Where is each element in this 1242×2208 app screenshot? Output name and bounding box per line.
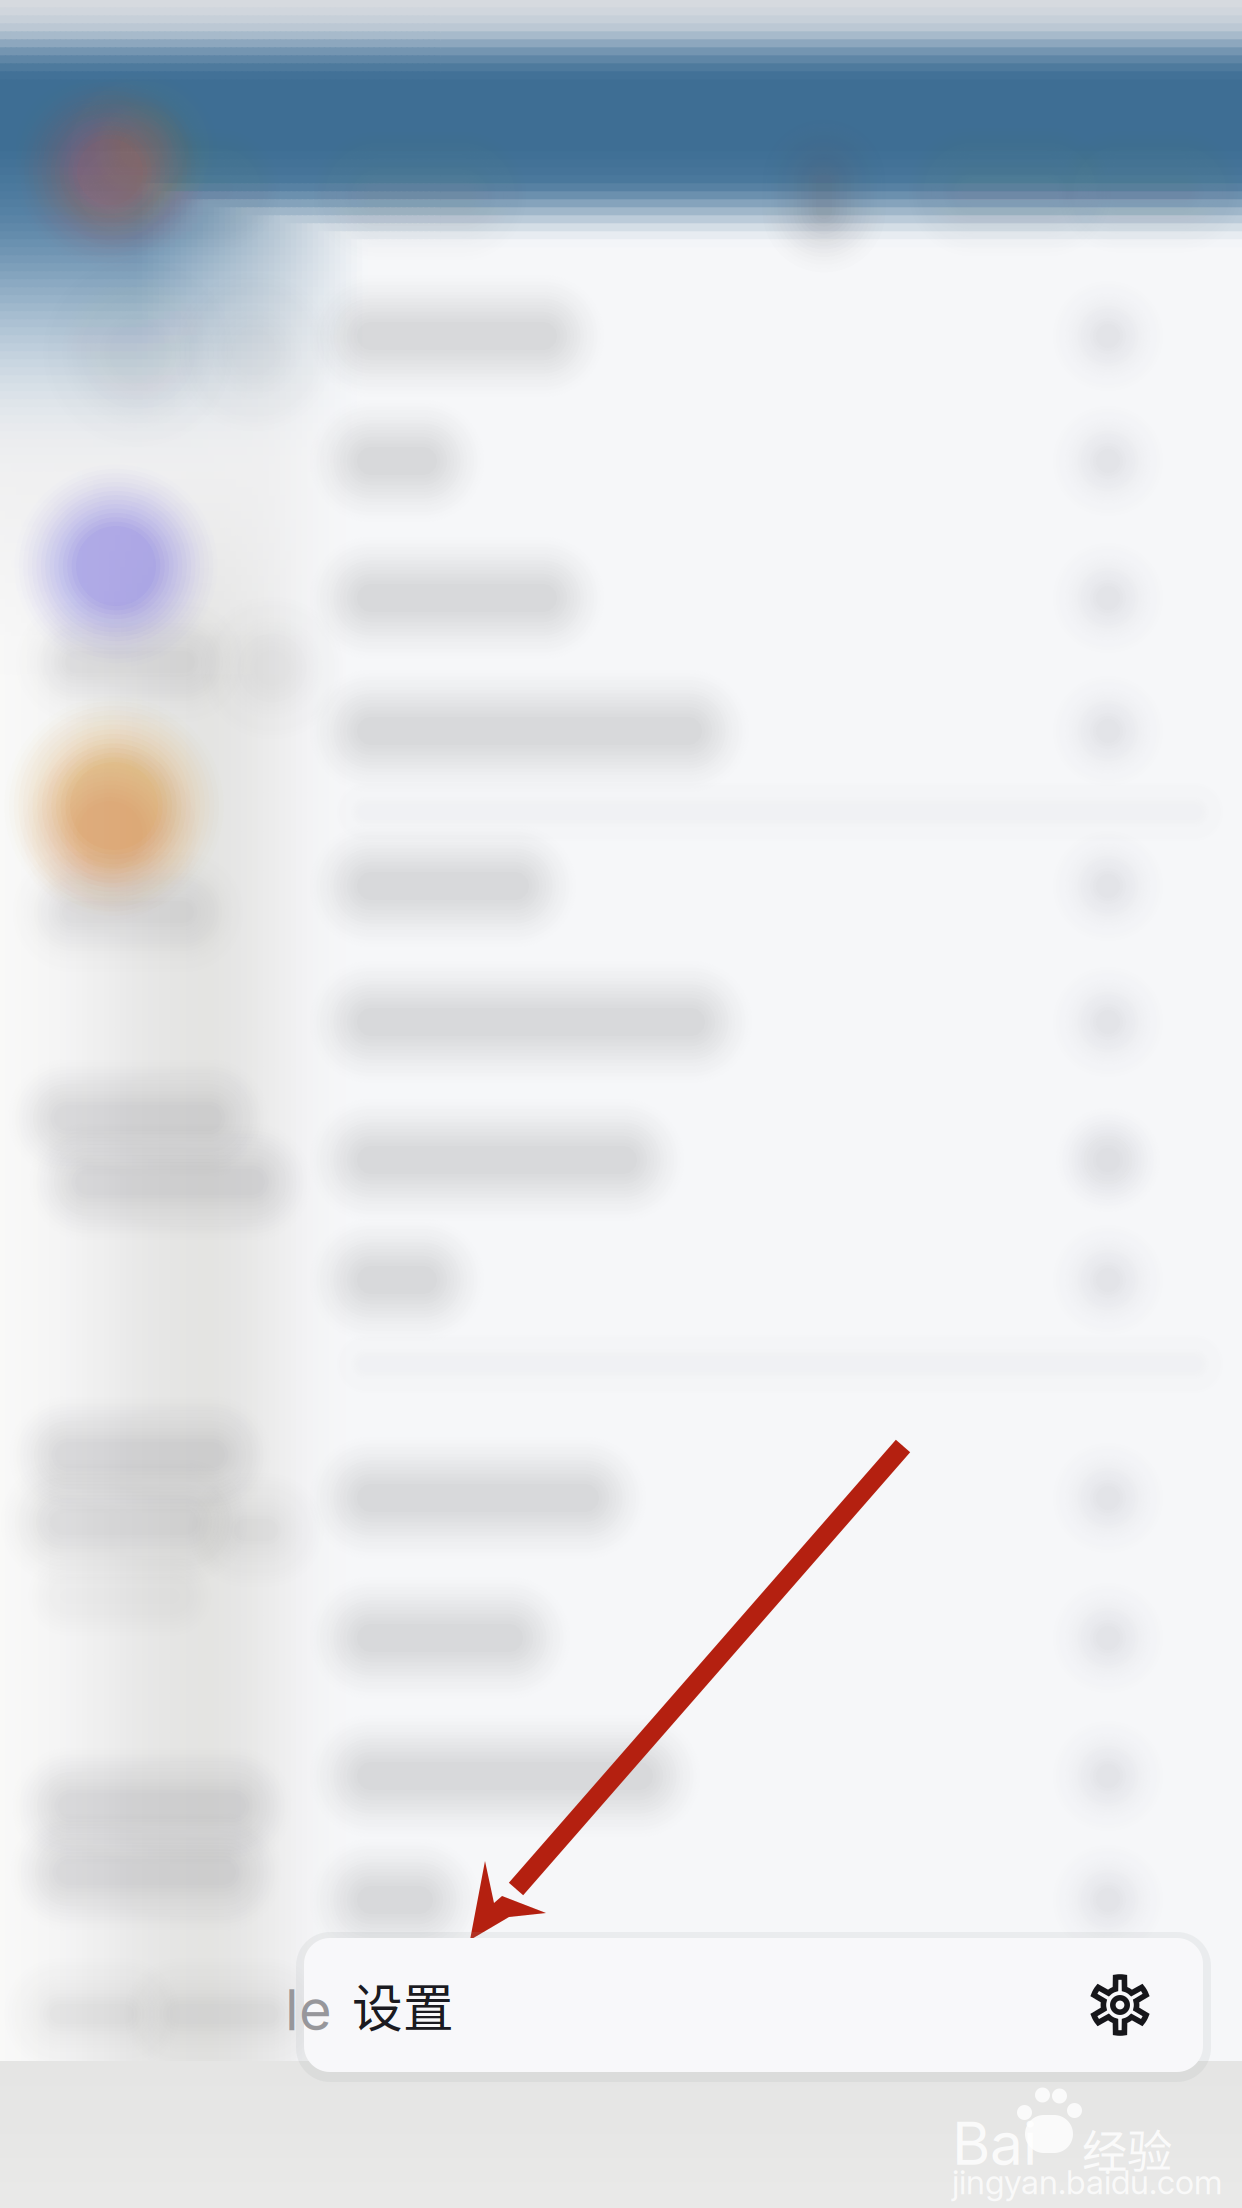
staticText: 设置	[352, 1968, 454, 2042]
staticText: jingyan.baidu.com	[952, 2162, 1222, 2202]
staticText: Bai	[952, 2108, 1037, 2179]
button[interactable]: 设置	[304, 1938, 1203, 2072]
staticText: le	[285, 1976, 332, 2044]
staticText: 经验	[1082, 2116, 1172, 2182]
